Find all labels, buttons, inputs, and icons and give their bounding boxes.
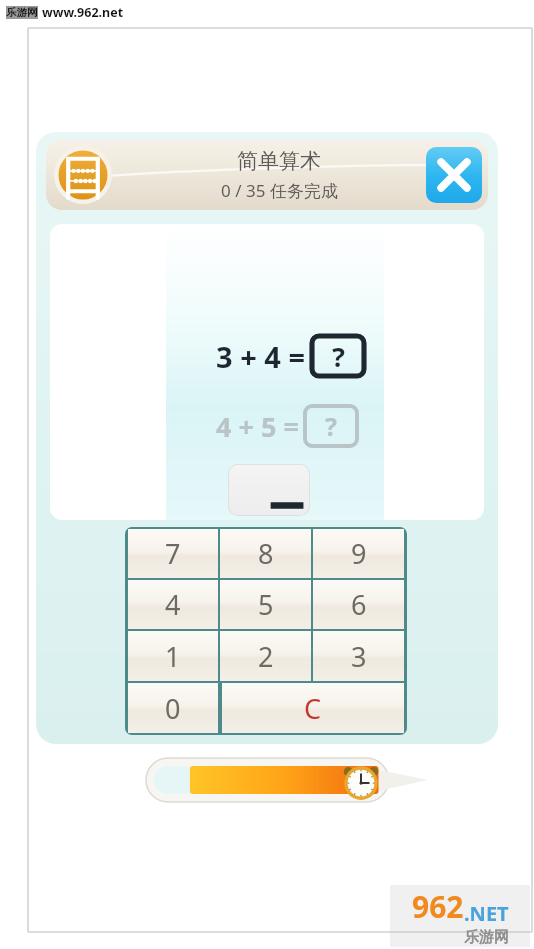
button[interactable]: 0 [128, 683, 218, 733]
staticText: www.962.net [42, 4, 124, 21]
button[interactable]: Abacus [54, 146, 112, 204]
staticText: 3 [351, 638, 367, 675]
staticText: 0 / 35 任务完成 [221, 179, 338, 202]
staticText: 9 [351, 535, 367, 572]
button[interactable] [46, 140, 488, 210]
button[interactable]: 4 [128, 580, 218, 629]
button[interactable]: C [222, 683, 404, 733]
staticText: C [304, 690, 322, 727]
button[interactable] [228, 464, 310, 516]
staticText: .NET [464, 900, 509, 927]
button[interactable]: 5 [220, 580, 311, 629]
button[interactable]: Close [426, 147, 482, 203]
staticText: ? [325, 409, 337, 443]
staticText: 2 [258, 638, 274, 675]
button[interactable]: Timer [146, 756, 428, 804]
staticText: 3 + 4 = [216, 337, 305, 376]
staticText: 8 [258, 535, 274, 572]
staticText: ? [332, 338, 345, 375]
button[interactable]: 1 [128, 631, 218, 681]
staticText: 4 + 5 = [216, 408, 299, 445]
button[interactable]: 3 [313, 631, 404, 681]
button[interactable]: 6 [313, 580, 404, 629]
button[interactable]: 7 [128, 529, 218, 578]
staticText: 1 [165, 638, 181, 675]
staticText: 简单算术 [237, 148, 321, 174]
staticText: 乐游网 [6, 6, 38, 19]
button[interactable]: 8 [220, 529, 311, 578]
staticText: 962 [412, 886, 464, 927]
button[interactable]: 9 [313, 529, 404, 578]
staticText: 0 [165, 690, 181, 727]
button[interactable]: 2 [220, 631, 311, 681]
staticText: 乐游网 [464, 928, 509, 947]
staticText: 5 [258, 586, 274, 623]
staticText: 7 [165, 535, 181, 572]
staticText: 4 [165, 586, 181, 623]
staticText: 6 [351, 586, 367, 623]
